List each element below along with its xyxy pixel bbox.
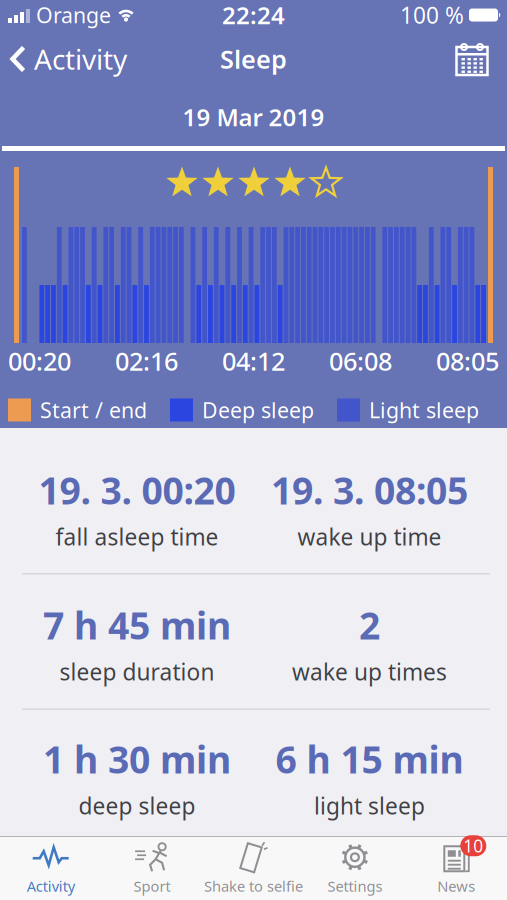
staticText: 04:12 (222, 344, 285, 378)
button[interactable]: Rate sleep quality (0, 151, 507, 197)
button[interactable]: Sport (101, 837, 203, 900)
staticText: fall asleep time (55, 522, 218, 552)
button[interactable]: Activity (0, 40, 127, 78)
staticText: 10 (463, 834, 483, 857)
staticText: 00:20 (8, 344, 71, 378)
staticText: Start / end (40, 396, 147, 424)
button[interactable]: 10 (406, 837, 507, 900)
button[interactable]: Shake to selfie (203, 837, 304, 900)
staticText: Orange (36, 1, 111, 29)
staticText: wake up times (292, 657, 447, 687)
staticText: 19. 3. 00:20 (38, 465, 235, 515)
staticText: 2 (359, 600, 380, 650)
staticText: 100 % (400, 0, 464, 30)
staticText: 19. 3. 08:05 (271, 465, 468, 515)
staticText: light sleep (314, 791, 425, 821)
staticText: 06:08 (329, 344, 392, 378)
button[interactable]: Calendar (455, 42, 507, 76)
staticText: deep sleep (78, 791, 195, 821)
staticText: Sleep (220, 42, 287, 76)
staticText: 02:16 (115, 344, 178, 378)
staticText: Sport (134, 876, 171, 896)
staticText: Activity (34, 40, 127, 78)
staticText: 6 h 15 min (275, 734, 463, 784)
staticText: 1 h 30 min (43, 734, 231, 784)
staticText: sleep duration (59, 657, 214, 687)
staticText: News (437, 876, 475, 896)
button[interactable]: Activity (0, 837, 101, 900)
staticText: Light sleep (369, 396, 479, 424)
staticText: 08:05 (436, 344, 499, 378)
staticText: Activity (27, 876, 75, 896)
staticText: Shake to selfie (204, 876, 303, 896)
staticText: 19 Mar 2019 (182, 101, 324, 133)
staticText: wake up time (297, 522, 441, 552)
button[interactable]: Settings (304, 837, 406, 900)
staticText: Settings (327, 876, 382, 896)
staticText: Deep sleep (202, 396, 314, 424)
staticText: 7 h 45 min (43, 600, 231, 650)
staticText: 22:24 (222, 0, 285, 31)
